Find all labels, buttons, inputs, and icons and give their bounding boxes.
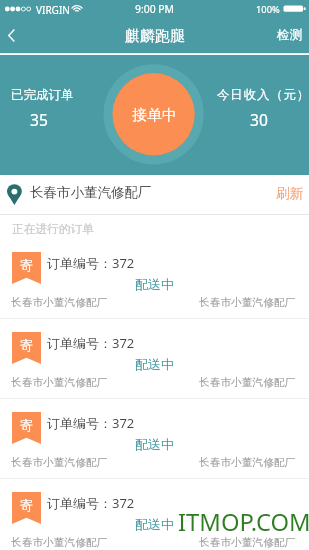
staticText: 100% (256, 3, 280, 16)
staticText: 长春市小董汽修配厂 (30, 184, 152, 201)
staticText: 寄 (20, 257, 33, 273)
button[interactable]: 寄 (0, 239, 309, 319)
staticText: VIRGIN (36, 3, 70, 17)
staticText: 配送中 (135, 436, 174, 452)
button[interactable]: 寄 (0, 479, 309, 550)
staticText: 正在进行的订单 (12, 222, 94, 237)
staticText: 麒麟跑腿 (125, 27, 185, 46)
staticText: 刷新 (276, 185, 303, 201)
button[interactable]: 寄 (0, 319, 309, 399)
staticText: 寄 (20, 337, 33, 353)
staticText: 长春市小董汽修配厂 (11, 376, 108, 389)
staticText: 寄 (20, 417, 33, 433)
button[interactable]: 长春市小董汽修配厂 (0, 175, 309, 214)
staticText: 长春市小董汽修配厂 (11, 536, 108, 549)
staticText: 检测 (277, 27, 302, 43)
staticText: 订单编号：372 (47, 254, 135, 272)
staticText: 长春市小董汽修配厂 (199, 456, 296, 469)
button[interactable]: 刷新 (266, 175, 309, 214)
staticText: 30 (250, 109, 268, 130)
staticText: 35 (30, 109, 48, 130)
button[interactable]: Back (0, 20, 32, 53)
staticText: 接单中 (132, 106, 177, 125)
staticText: 长春市小董汽修配厂 (199, 536, 296, 549)
button[interactable]: 接单中 (112, 73, 195, 156)
staticText: 长春市小董汽修配厂 (11, 296, 108, 309)
staticText: 已完成订单 (11, 87, 74, 103)
staticText: 9:00 PM (135, 2, 175, 16)
staticText: 长春市小董汽修配厂 (199, 376, 296, 389)
staticText: 长春市小董汽修配厂 (11, 456, 108, 469)
staticText: 配送中 (135, 276, 174, 292)
staticText: 订单编号：372 (47, 494, 135, 512)
staticText: 寄 (20, 497, 33, 513)
staticText: 配送中 (135, 356, 174, 372)
button[interactable]: 检测 (267, 20, 309, 50)
staticText: 长春市小董汽修配厂 (199, 296, 296, 309)
staticText: 配送中 (135, 516, 174, 532)
staticText: ITMOP.COM (178, 506, 309, 538)
staticText: 今日收入（元） (217, 87, 309, 103)
staticText: 订单编号：372 (47, 334, 135, 352)
button[interactable]: 寄 (0, 399, 309, 479)
staticText: 订单编号：372 (47, 414, 135, 432)
